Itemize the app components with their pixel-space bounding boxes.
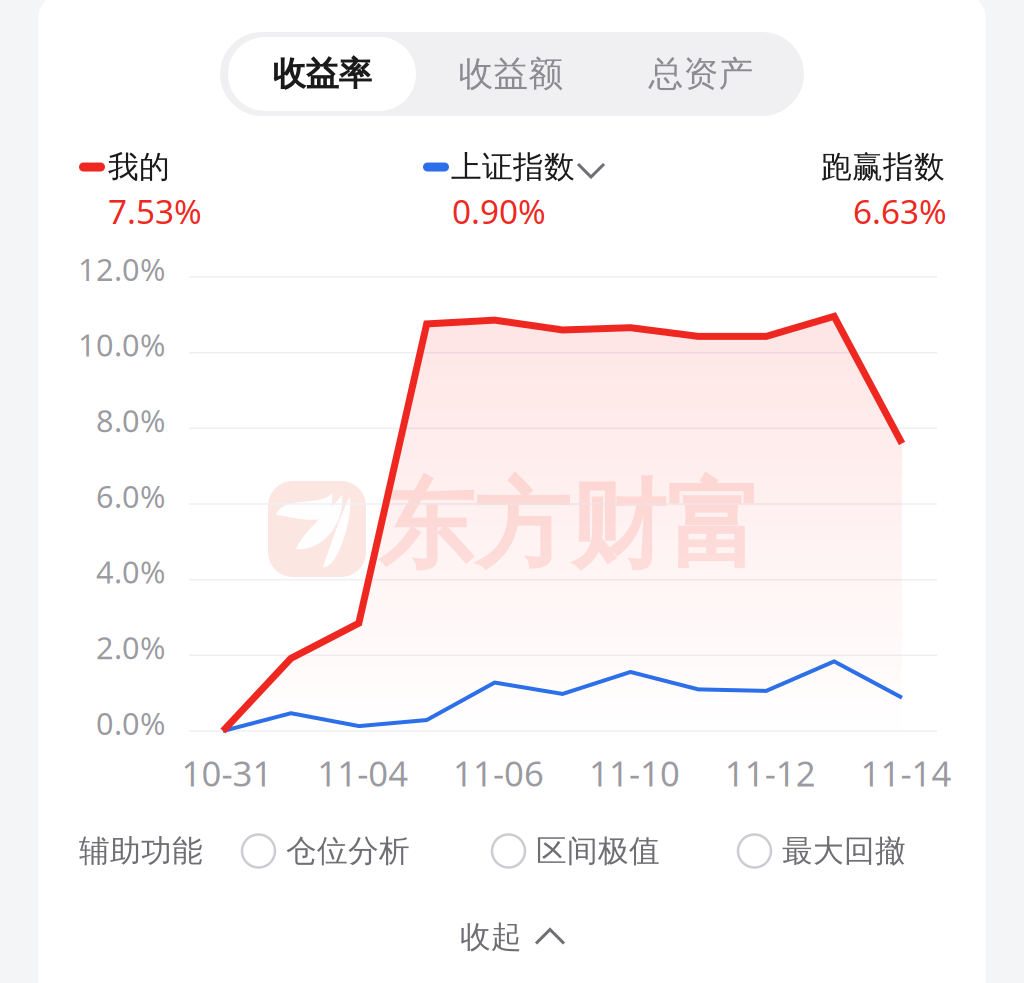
button[interactable]: 收益额 (416, 37, 606, 111)
staticText: 4.0% (96, 551, 165, 592)
staticText: 区间极值 (536, 832, 660, 870)
staticText: 11-10 (589, 750, 680, 796)
staticText: 总资产 (648, 53, 753, 95)
staticText: 跑赢指数 (821, 148, 945, 186)
staticText: 收益率 (272, 53, 371, 94)
button[interactable]: 最大回撤 (738, 829, 910, 873)
button[interactable]: 我的 (79, 145, 201, 235)
staticText: 我的 (108, 148, 170, 186)
staticText: 11-04 (317, 750, 408, 796)
staticText: 10-31 (181, 750, 272, 796)
staticText: 11-12 (725, 750, 816, 796)
staticText: 7.53% (108, 189, 202, 233)
staticText: 上证指数 (451, 148, 575, 186)
staticText: 东方财富 (378, 467, 762, 585)
button[interactable]: 收益率 (228, 37, 416, 111)
button[interactable]: 总资产 (606, 37, 796, 111)
staticText: 辅助功能 (79, 832, 203, 870)
staticText: 10.0% (78, 324, 165, 365)
staticText: 11-06 (453, 750, 544, 796)
staticText: 0.0% (96, 703, 165, 743)
staticText: 收益额 (458, 53, 563, 95)
staticText: 最大回撤 (782, 832, 906, 870)
staticText: 6.63% (853, 189, 947, 233)
staticText: 2.0% (96, 627, 165, 668)
staticText: 8.0% (96, 400, 165, 441)
button[interactable]: 收起 (460, 918, 564, 956)
button[interactable]: 仓位分析 (242, 829, 414, 873)
button[interactable]: 上证指数 (423, 145, 605, 235)
button[interactable]: 区间极值 (492, 829, 664, 873)
staticText: 仓位分析 (286, 832, 410, 870)
staticText: 0.90% (452, 189, 546, 233)
staticText: 12.0% (78, 249, 165, 289)
staticText: 6.0% (96, 476, 165, 516)
staticText: 11-14 (860, 750, 951, 796)
staticText: 收起 (460, 918, 522, 956)
